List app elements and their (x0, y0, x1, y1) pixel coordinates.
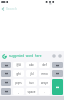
staticText: jkl (30, 72, 34, 76)
staticText: . (44, 90, 45, 94)
button[interactable]: Emoji (1, 88, 11, 95)
button[interactable]: wxyz (39, 79, 50, 86)
staticText: ghi (16, 72, 21, 76)
staticText: suggested word here (9, 54, 42, 58)
button[interactable]: suggested word here (9, 51, 51, 61)
button[interactable]: Backspace (52, 62, 63, 68)
button[interactable]: , (13, 88, 24, 95)
staticText: space (27, 90, 36, 94)
staticText: mno (41, 72, 48, 76)
staticText: @# (16, 63, 21, 67)
button[interactable]: Settings (57, 53, 63, 59)
button[interactable]: Google (1, 53, 8, 60)
staticText: Search (6, 6, 17, 11)
button[interactable]: Clear (52, 70, 63, 77)
button[interactable]: Symbols (1, 62, 11, 68)
button[interactable]: @# (13, 62, 24, 68)
button[interactable]: ghi (13, 70, 24, 77)
staticText: abc (29, 63, 34, 67)
button[interactable]: pqrs (13, 79, 24, 86)
button[interactable]: abc (26, 62, 37, 68)
button[interactable]: Voice input (51, 53, 57, 59)
staticText: , (18, 90, 19, 94)
button[interactable]: jkl (26, 70, 37, 77)
staticText: tuv (29, 81, 34, 85)
staticText: wxyz (41, 81, 48, 85)
button[interactable]: Language (1, 79, 11, 86)
button[interactable]: Back (0, 6, 6, 12)
button[interactable]: Enter (52, 79, 63, 95)
button[interactable]: Search (6, 5, 64, 12)
button[interactable]: def (39, 62, 50, 68)
button[interactable]: Shift (1, 70, 11, 77)
button[interactable]: space (26, 88, 37, 95)
staticText: def (42, 63, 47, 67)
staticText: pqrs (15, 81, 22, 85)
button[interactable]: mno (39, 70, 50, 77)
button[interactable]: tuv (26, 79, 37, 86)
